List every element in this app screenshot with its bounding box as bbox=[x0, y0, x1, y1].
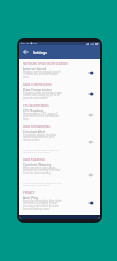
staticText: DATA COMPRESSION bbox=[23, 83, 100, 87]
staticText: Constantly display the data forwarding s… bbox=[23, 133, 62, 142]
button[interactable]: Toggle setting bbox=[88, 200, 94, 206]
staticText: Show realtime CPU usage of your device i… bbox=[23, 112, 62, 121]
staticText: Keep the connection alive when the devic… bbox=[23, 199, 62, 211]
button[interactable]: Toggle setting bbox=[88, 70, 94, 76]
staticText: Internet Speed bbox=[23, 66, 47, 70]
button[interactable]: Back bbox=[22, 48, 30, 56]
staticText: Turn this off to hide it from the notifi… bbox=[23, 148, 62, 154]
staticText: Auto Ping bbox=[23, 195, 39, 199]
staticText: Display current network speed in status … bbox=[23, 70, 62, 79]
staticText: NETWORK SPEED NOTIFICATION bbox=[23, 62, 100, 66]
button[interactable]: Overlimit Warning bbox=[19, 162, 100, 188]
button[interactable]: Toggle setting bbox=[88, 91, 94, 97]
staticText: PRIVACY bbox=[23, 191, 100, 195]
button[interactable]: Toggle setting bbox=[88, 139, 94, 145]
staticText: DATA ROAMING bbox=[23, 158, 100, 162]
button[interactable]: Auto Ping bbox=[19, 195, 100, 212]
button[interactable]: Constant Alert bbox=[19, 129, 100, 155]
staticText: Compress data and reduce your mobile dat… bbox=[23, 91, 62, 100]
button[interactable]: Toggle setting bbox=[88, 112, 94, 118]
button[interactable]: Data Compression bbox=[19, 87, 100, 101]
button[interactable]: Toggle setting bbox=[88, 172, 94, 178]
staticText: Overlimit Warning bbox=[23, 162, 52, 166]
button[interactable]: Internet Speed bbox=[19, 66, 100, 80]
staticText: Warn me when data usage exceeds the mont… bbox=[23, 166, 62, 175]
button[interactable]: CPU Readout bbox=[19, 108, 100, 122]
staticText: CPU MONITORING bbox=[23, 104, 100, 108]
staticText: CPU Readout bbox=[23, 108, 44, 112]
staticText: Settings bbox=[33, 50, 47, 55]
staticText: DATA FORWARDING bbox=[23, 125, 100, 129]
staticText: An alert will always appear in the notif… bbox=[23, 181, 62, 187]
staticText: Data Compression bbox=[23, 87, 52, 91]
staticText: Constant Alert bbox=[23, 129, 46, 133]
staticText: 9:41 AM ● LTE bbox=[21, 42, 38, 45]
